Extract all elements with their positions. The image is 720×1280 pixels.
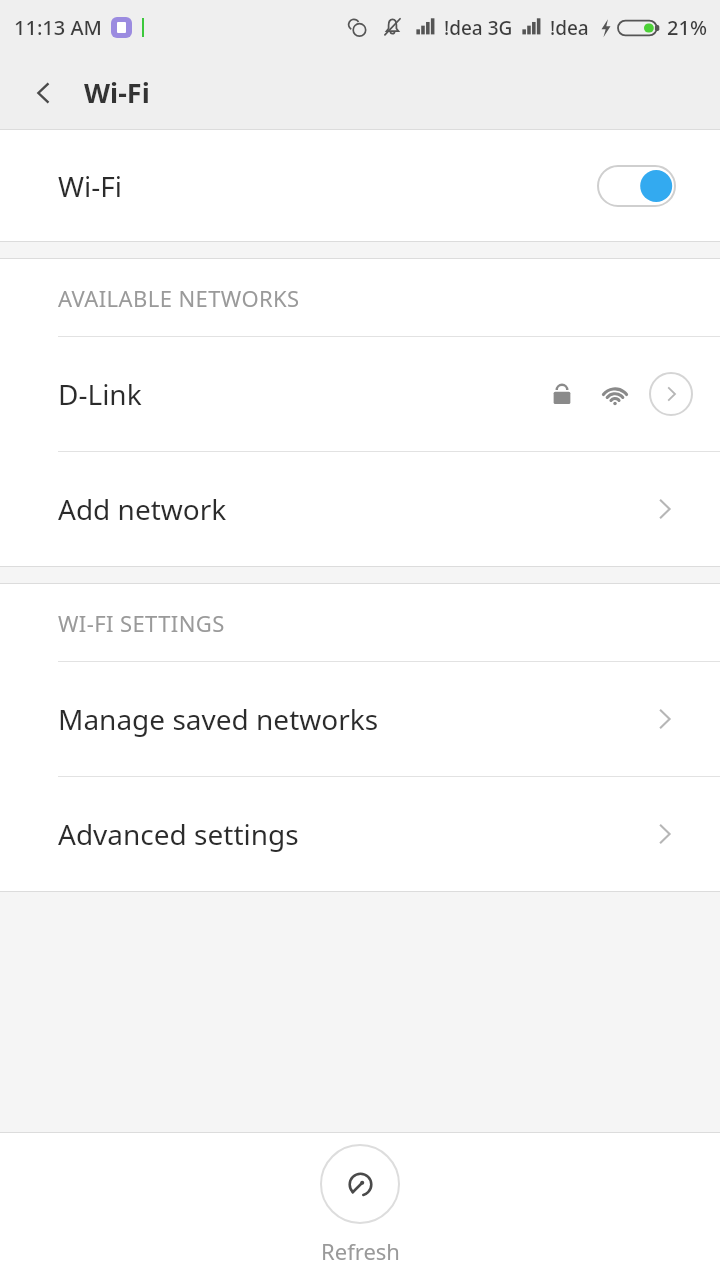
staticText: Wi-Fi bbox=[84, 74, 150, 111]
button[interactable]: Wi-Fi bbox=[0, 130, 720, 241]
button[interactable]: Back bbox=[14, 63, 74, 123]
staticText: AVAILABLE NETWORKS bbox=[58, 283, 300, 313]
staticText: 21% bbox=[667, 14, 707, 41]
staticText: Add network bbox=[58, 490, 227, 528]
staticText: !dea 3G bbox=[444, 15, 513, 41]
staticText: !dea bbox=[550, 15, 589, 41]
button[interactable]: Add network bbox=[0, 452, 720, 566]
button[interactable]: Network details bbox=[649, 372, 693, 416]
staticText: Wi-Fi bbox=[58, 167, 123, 205]
button[interactable]: Refresh bbox=[0, 1133, 720, 1280]
staticText: Refresh bbox=[321, 1236, 400, 1266]
staticText: Advanced settings bbox=[58, 815, 299, 853]
button[interactable]: Advanced settings bbox=[0, 777, 720, 891]
staticText: WI-FI SETTINGS bbox=[58, 608, 225, 638]
staticText: D-Link bbox=[58, 375, 142, 413]
staticText: Manage saved networks bbox=[58, 700, 379, 738]
button[interactable]: D-Link bbox=[0, 337, 720, 451]
staticText: 11:13 AM bbox=[14, 14, 102, 41]
button[interactable]: Manage saved networks bbox=[0, 662, 720, 776]
